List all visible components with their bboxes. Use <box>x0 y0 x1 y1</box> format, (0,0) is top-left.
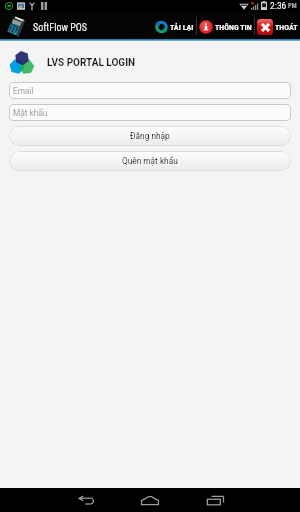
staticText: Email <box>13 86 34 96</box>
button[interactable]: THÔNG TIN <box>197 13 254 39</box>
button[interactable]: TẢI LẠI <box>153 13 196 39</box>
button[interactable]: Đăng nhập <box>9 126 291 146</box>
staticText: Đăng nhập <box>130 131 170 141</box>
staticText: SoftFlow POS <box>33 22 87 34</box>
button[interactable]: Home <box>127 488 173 512</box>
button[interactable]: Mật khẩu <box>9 104 291 121</box>
staticText: Quên mật khẩu <box>122 156 178 166</box>
staticText: 2:36 <box>270 0 287 11</box>
staticText: PM <box>288 2 297 10</box>
staticText: TẢI LẠI <box>170 23 194 32</box>
staticText: THÔNG TIN <box>215 23 252 32</box>
staticText: THOÁT <box>275 23 298 32</box>
button[interactable]: Recent apps <box>192 488 238 512</box>
button[interactable]: THOÁT <box>255 13 300 39</box>
button[interactable]: Back <box>62 488 108 512</box>
button[interactable]: Email <box>9 82 291 99</box>
staticText: LVS PORTAL LOGIN <box>47 57 136 69</box>
button[interactable]: Quên mật khẩu <box>9 151 291 171</box>
staticText: Mật khẩu <box>13 108 48 118</box>
